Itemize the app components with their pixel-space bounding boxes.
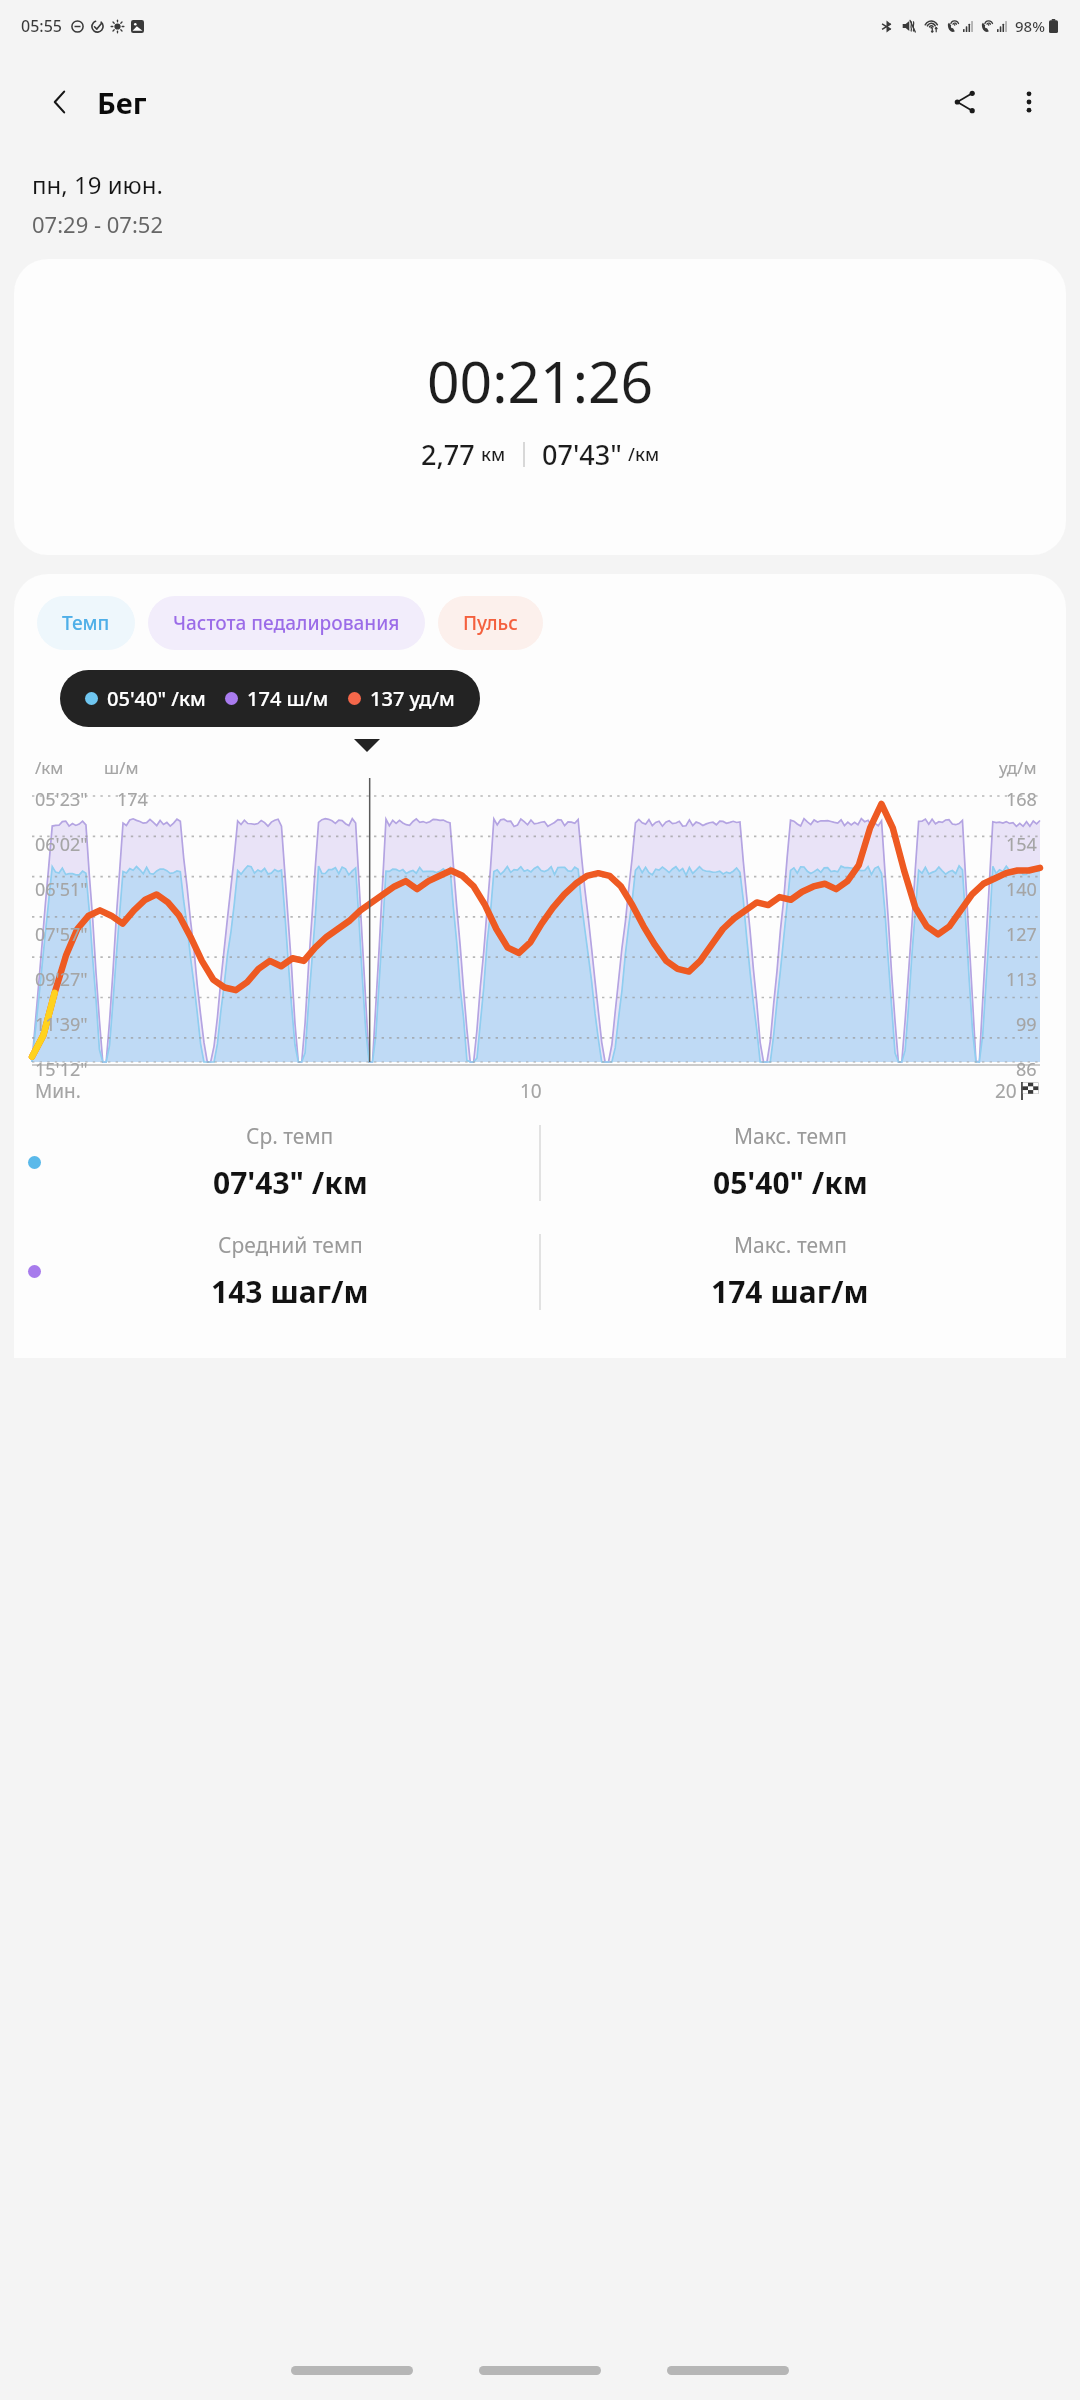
button[interactable]: Частота педалирования [148, 596, 425, 650]
staticText: 127 [1006, 922, 1037, 947]
staticText: 168 [1006, 787, 1037, 812]
staticText: 154 [1006, 832, 1037, 857]
staticText: 2,77 [421, 436, 475, 473]
staticText: 00:21:26 [427, 342, 654, 420]
staticText: 174 ш/м [247, 685, 329, 712]
staticText: 174 [117, 787, 148, 812]
staticText: 10 [520, 1078, 542, 1104]
staticText: Средний темп [218, 1231, 363, 1260]
staticText: 05'40" /км [107, 685, 206, 712]
button[interactable]: Поделиться [938, 75, 992, 129]
staticText: /км [35, 756, 64, 779]
staticText: 143 шаг/м [211, 1271, 369, 1312]
button[interactable]: Назад [667, 2366, 789, 2375]
staticText: Темп [62, 610, 110, 636]
staticText: /км [628, 442, 660, 467]
staticText: уд/м [999, 756, 1037, 779]
staticText: 05:55 [21, 15, 62, 37]
button[interactable]: Ещё [1002, 75, 1056, 129]
staticText: 06'02" [35, 832, 88, 857]
staticText: 07'43" /км [213, 1162, 368, 1203]
staticText: пн, 19 июн. [32, 168, 163, 201]
staticText: Пульс [463, 610, 518, 636]
button[interactable]: Ср. темп [41, 1122, 539, 1203]
button[interactable]: Темп [37, 596, 135, 650]
staticText: 98% [1015, 16, 1045, 36]
staticText: 07'43" [542, 436, 622, 473]
staticText: 20 [995, 1078, 1017, 1104]
button[interactable]: Пульс [438, 596, 543, 650]
staticText: 86 [1016, 1057, 1037, 1082]
staticText: Частота педалирования [173, 610, 400, 636]
staticText: 137 уд/м [370, 685, 455, 712]
staticText: 05'40" /км [713, 1162, 868, 1203]
staticText: Мин. [35, 1078, 81, 1104]
staticText: 06'51" [35, 877, 88, 902]
button[interactable]: Макс. темп [541, 1231, 1039, 1312]
staticText: Макс. темп [734, 1122, 847, 1151]
button[interactable]: Недавние [291, 2366, 413, 2375]
staticText: 11'39" [35, 1012, 88, 1037]
staticText: 174 шаг/м [711, 1271, 869, 1312]
staticText: 140 [1006, 877, 1037, 902]
button[interactable]: Средний темп [41, 1231, 539, 1312]
button[interactable]: Назад [34, 76, 86, 128]
staticText: Бег [97, 83, 147, 122]
button[interactable]: Макс. темп [541, 1122, 1039, 1203]
staticText: 07'57" [35, 922, 88, 947]
staticText: 15'12" [35, 1057, 88, 1082]
staticText: Ср. темп [246, 1122, 334, 1151]
staticText: 99 [1016, 1012, 1037, 1037]
staticText: Макс. темп [734, 1231, 847, 1260]
staticText: 09'27" [35, 967, 88, 992]
staticText: км [481, 442, 506, 467]
staticText: 07:29 - 07:52 [32, 209, 163, 239]
button[interactable]: Главный экран [479, 2366, 601, 2375]
staticText: ш/м [104, 756, 139, 779]
staticText: 05'23" [35, 787, 88, 812]
button[interactable]: 00:21:26 [14, 259, 1066, 555]
staticText: 113 [1006, 967, 1037, 992]
